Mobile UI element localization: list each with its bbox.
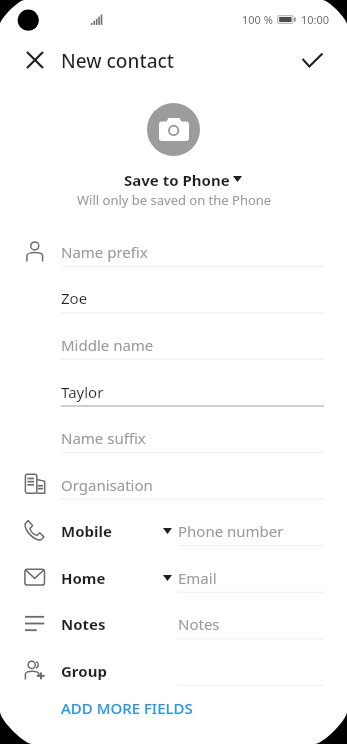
staticText: Name prefix	[61, 242, 148, 262]
button[interactable]: Mobile	[0, 502, 347, 549]
button[interactable]: Zoe	[0, 269, 347, 316]
button[interactable]: Add photo	[147, 103, 200, 156]
button[interactable]: Taylor	[0, 363, 347, 410]
staticText: 100 %	[242, 12, 273, 27]
button[interactable]: Home	[0, 549, 347, 596]
staticText: ADD MORE FIELDS	[61, 698, 193, 718]
button[interactable]: Middle name	[0, 316, 347, 363]
staticText: Name suffix	[61, 428, 146, 448]
button[interactable]: Notes	[0, 595, 347, 642]
button[interactable]: Close	[18, 43, 52, 77]
button[interactable]: Save	[295, 43, 329, 77]
button[interactable]: Group	[0, 642, 347, 689]
button[interactable]: Change account	[233, 176, 242, 182]
staticText: 10:00	[301, 12, 330, 27]
button[interactable]: Save to Phone	[124, 170, 230, 190]
staticText: Notes	[61, 614, 106, 634]
staticText: Email	[178, 568, 217, 588]
staticText: Will only be saved on the Phone	[77, 191, 272, 209]
staticText: Taylor	[61, 382, 104, 402]
button[interactable]: Name prefix	[0, 223, 347, 270]
button[interactable]: Name suffix	[0, 409, 347, 456]
staticText: Zoe	[61, 288, 88, 308]
staticText: Notes	[178, 614, 220, 634]
staticText: Home	[61, 568, 106, 588]
staticText: Phone number	[178, 521, 284, 541]
staticText: Middle name	[61, 335, 154, 355]
staticText: Group	[61, 661, 107, 681]
button[interactable]: ADD MORE FIELDS	[0, 690, 347, 730]
staticText: Organisation	[61, 475, 153, 495]
staticText: Mobile	[61, 521, 112, 541]
button[interactable]: Organisation	[0, 456, 347, 503]
staticText: New contact	[61, 48, 175, 74]
